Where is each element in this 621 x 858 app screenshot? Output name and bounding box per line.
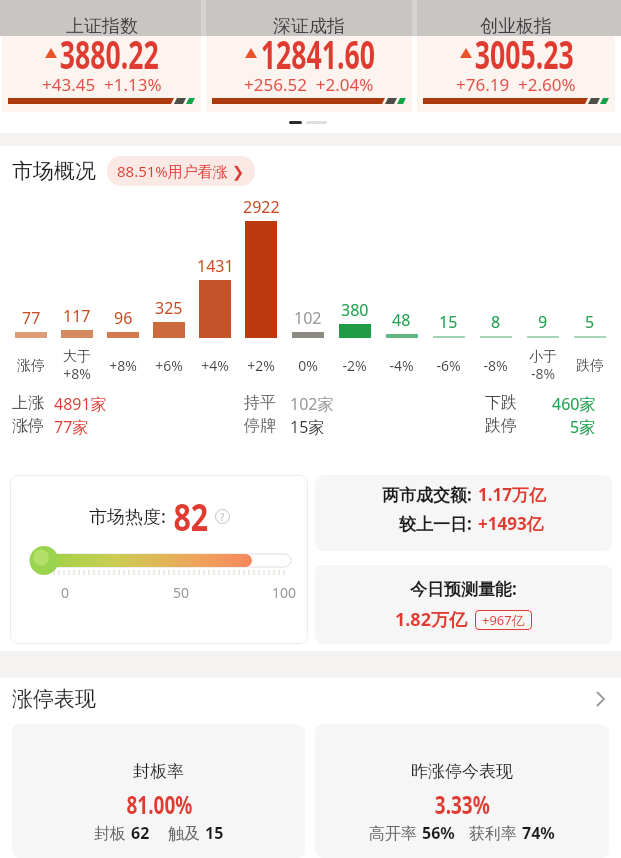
staticText: -6% [436,356,461,375]
staticText: 1431 [197,255,234,277]
button[interactable]: 88.51%用户看涨 ❯ [107,156,255,186]
staticText: 跌停 [485,416,517,436]
staticText: 封板率 [133,761,184,782]
staticText: 0% [298,356,318,375]
staticText: 81.00% [126,787,192,821]
staticText: +4% [201,356,229,375]
staticText: 下跌 [485,393,517,413]
staticText: +1493亿 [478,512,544,535]
staticText: 创业板指 [480,15,552,38]
staticText: 102家 [290,393,334,415]
staticText: 325 [155,297,183,319]
staticText: 深证成指 [273,15,345,38]
staticText: 5 [585,311,595,333]
staticText: 3.33% [435,787,490,821]
staticText: 较上一日: [399,512,472,535]
staticText: 117 [63,305,91,327]
staticText: 涨停表现 [12,686,96,712]
staticText: +43.45 +1.13% [42,73,162,96]
staticText: +2% [247,356,275,375]
staticText: +6% [155,356,183,375]
staticText: 3880.22 [60,26,159,80]
staticText: -8% [483,356,508,375]
staticText: +967亿 [482,611,525,629]
staticText: 市场热度: [89,504,166,529]
staticText: 48 [392,309,411,331]
staticText: 380 [341,299,369,321]
staticText: 1.17万亿 [478,483,546,506]
staticText: 5家 [570,416,596,438]
staticText: 15 [205,822,224,844]
staticText: 88.51%用户看涨 ❯ [117,161,245,181]
button[interactable]: 涨停表现 [0,678,621,724]
staticText: 涨停 [17,357,45,375]
staticText: 1.82万亿 [395,607,467,632]
button[interactable]: 封板率 [12,724,305,858]
staticText: 高开率 [369,822,422,844]
staticText: 市场概况 [12,158,96,184]
staticText: 4891家 [54,393,107,415]
staticText: 77 [22,307,41,329]
staticText: 62 [131,822,150,844]
staticText: -2% [342,356,367,375]
staticText: 9 [538,311,548,333]
staticText: 50 [173,583,190,602]
staticText: -4% [389,356,414,375]
staticText: 涨停 [12,416,44,436]
staticText: 100 [272,583,297,602]
staticText: 小于 -8% [529,348,557,383]
button[interactable]: 上证指数 [2,0,201,112]
staticText: 持平 [244,393,276,413]
staticText: 56% [422,822,455,844]
staticText: 460家 [552,393,596,415]
staticText: +256.52 +2.04% [244,73,374,96]
staticText: 上涨 [12,393,44,413]
staticText: 上证指数 [66,15,138,38]
staticText: ? [220,510,225,524]
staticText: 3005.23 [475,26,574,80]
staticText: 昨涨停今表现 [411,761,513,782]
staticText: 8 [491,311,501,333]
staticText: 今日预测量能: [410,577,517,600]
staticText: 触及 [168,822,205,844]
staticText: 0 [61,583,70,602]
staticText: 获利率 [469,822,522,844]
button[interactable]: 两市成交额: [315,475,612,551]
staticText: +8% [109,356,137,375]
button[interactable]: 创业板指 [417,0,615,112]
staticText: 2922 [243,196,280,218]
staticText: 跌停 [576,357,604,375]
button[interactable]: 昨涨停今表现 [315,724,609,858]
button[interactable]: 深证成指 [206,0,412,112]
staticText: 102 [294,307,322,329]
staticText: 封板 [94,822,131,844]
button[interactable]: 今日预测量能: [315,565,612,644]
staticText: 74% [522,822,555,844]
staticText: +76.19 +2.60% [456,73,576,96]
staticText: 96 [114,307,133,329]
staticText: 15家 [290,416,325,438]
button[interactable]: 市场热度: [10,475,308,644]
staticText: 15 [439,311,458,333]
staticText: 77家 [54,416,89,438]
staticText: 两市成交额: [382,483,472,506]
staticText: 大于 +8% [63,348,91,383]
staticText: 82 [173,490,209,542]
staticText: 停牌 [244,416,276,436]
staticText: 12841.60 [261,26,375,80]
